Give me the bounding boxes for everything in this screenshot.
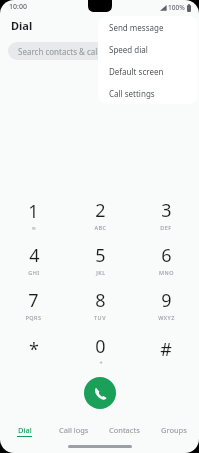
button[interactable]: 5: [67, 237, 133, 282]
button[interactable]: Default screen: [98, 60, 198, 82]
button[interactable]: Search contacts & call logs: [8, 42, 191, 60]
staticText: 4: [29, 243, 40, 268]
staticText: DEF: [160, 224, 172, 231]
staticText: GHI: [28, 269, 40, 276]
staticText: 2: [95, 198, 106, 223]
staticText: WXYZ: [158, 314, 175, 321]
staticText: 8: [95, 288, 106, 313]
button[interactable]: Call logs: [49, 425, 99, 443]
staticText: 10:00: [9, 2, 27, 12]
staticText: 5: [95, 243, 106, 268]
button[interactable]: 2: [67, 192, 133, 237]
staticText: Contacts: [109, 425, 140, 435]
staticText: PQRS: [25, 314, 42, 321]
button[interactable]: Dial: [0, 425, 49, 443]
button[interactable]: 9: [133, 282, 199, 327]
staticText: Send message: [109, 22, 164, 33]
button[interactable]: 8: [67, 282, 133, 327]
staticText: 9: [161, 288, 172, 313]
staticText: Speed dial: [109, 44, 148, 55]
staticText: Search contacts & call logs: [18, 46, 118, 57]
staticText: ABC: [94, 224, 107, 231]
button[interactable]: Call: [84, 377, 116, 409]
button[interactable]: 3: [133, 192, 199, 237]
staticText: 6: [161, 243, 172, 268]
staticText: ∞: [31, 225, 37, 231]
button[interactable]: 7: [0, 282, 67, 327]
button[interactable]: 4: [0, 237, 67, 282]
staticText: 1: [28, 199, 39, 224]
staticText: 0: [95, 334, 106, 359]
staticText: Dial: [11, 18, 33, 33]
staticText: TUV: [94, 314, 106, 321]
button[interactable]: Contacts: [99, 425, 149, 443]
button[interactable]: Speed dial: [98, 38, 198, 60]
staticText: JKL: [96, 269, 106, 276]
staticText: Groups: [161, 425, 187, 435]
button[interactable]: 6: [133, 237, 199, 282]
button[interactable]: Groups: [149, 425, 199, 443]
staticText: 3: [161, 198, 172, 223]
staticText: *: [29, 337, 39, 362]
staticText: MNO: [159, 269, 174, 276]
button[interactable]: Call settings: [98, 82, 198, 104]
staticText: #: [160, 337, 172, 362]
button[interactable]: 0: [67, 327, 133, 372]
staticText: 100%: [168, 3, 185, 12]
staticText: Default screen: [109, 66, 164, 77]
staticText: Call logs: [59, 425, 89, 435]
button[interactable]: Send message: [98, 16, 198, 38]
staticText: Call settings: [109, 88, 155, 99]
button[interactable]: #: [133, 327, 199, 372]
staticText: +: [99, 359, 103, 366]
staticText: 7: [28, 288, 39, 313]
button[interactable]: *: [0, 327, 67, 372]
staticText: Dial: [18, 425, 32, 435]
button[interactable]: 1: [0, 192, 67, 237]
